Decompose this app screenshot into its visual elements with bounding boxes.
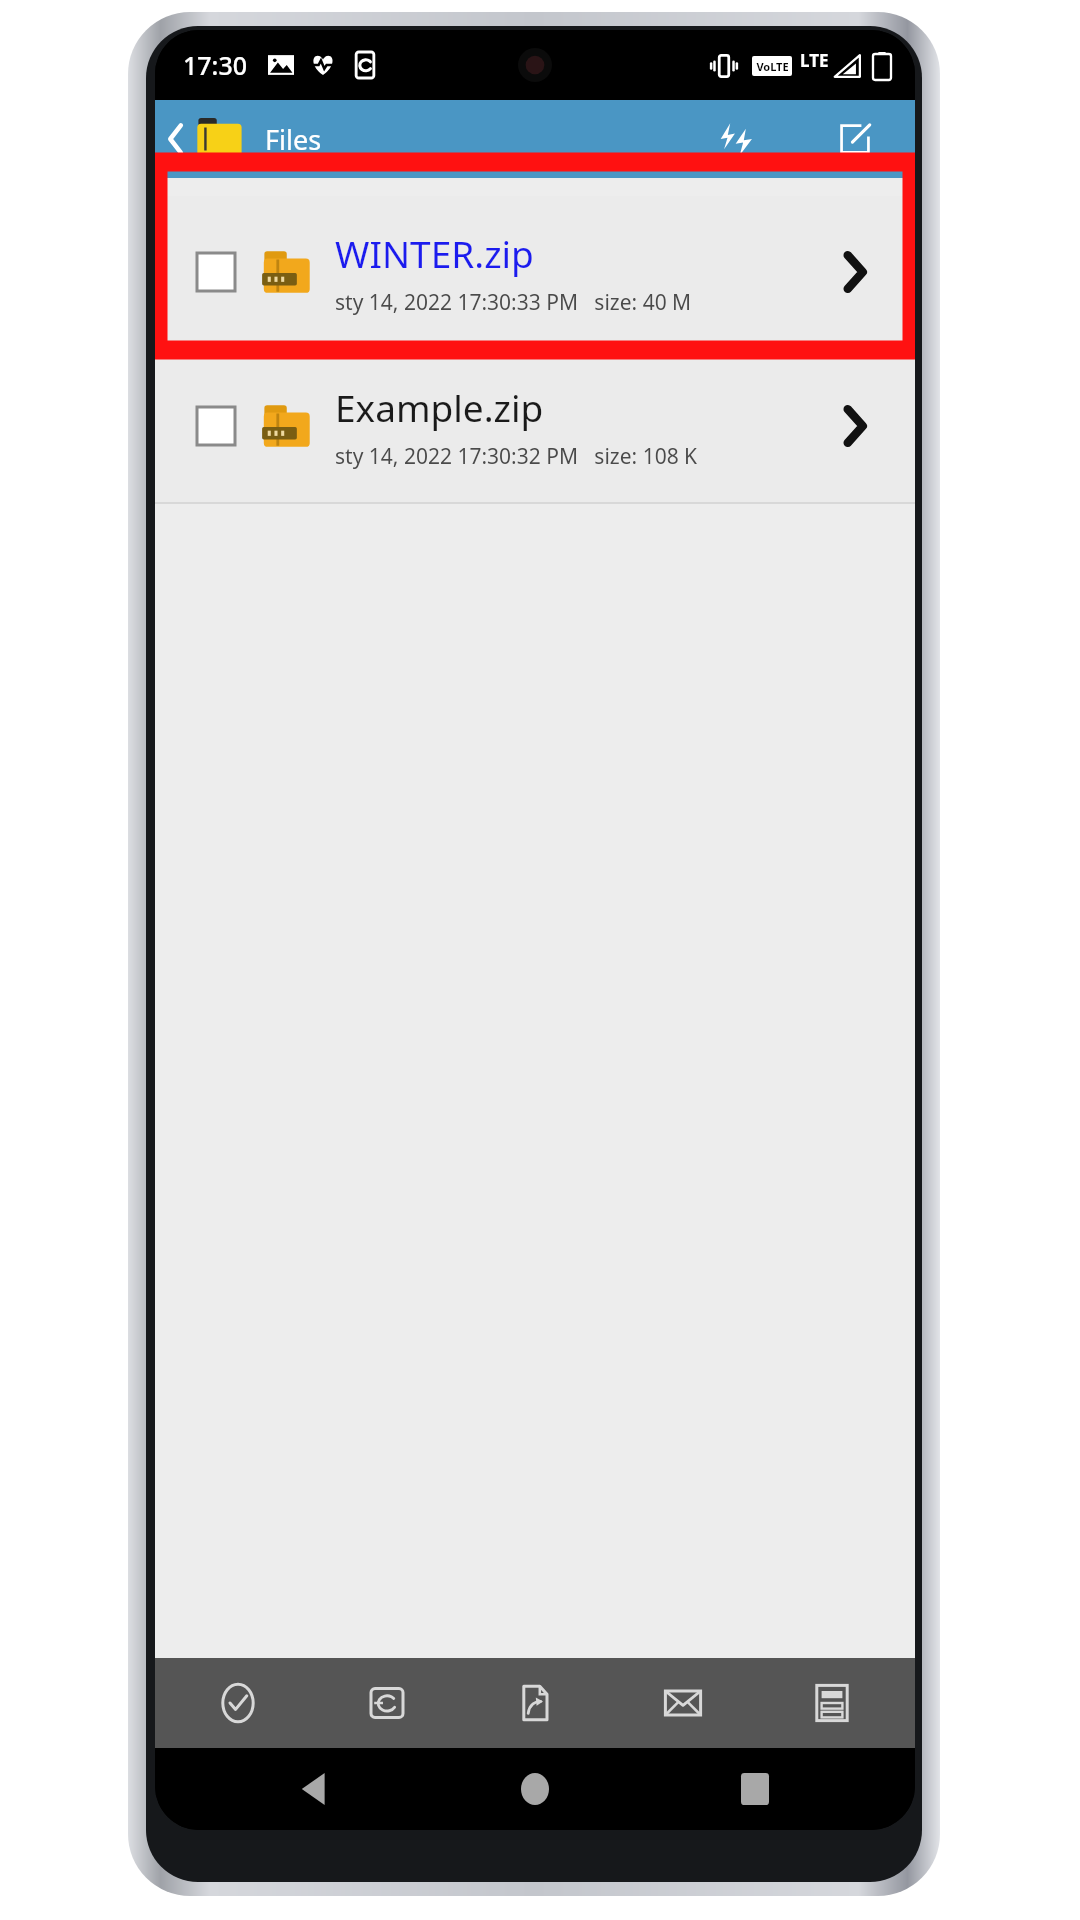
button[interactable]: Select WINTER.zip [189, 245, 243, 299]
button[interactable]: Share file [470, 1658, 600, 1748]
button[interactable]: View options [767, 1658, 897, 1748]
staticText: Files [265, 121, 322, 158]
staticText: sty 14, 2022 17:30:32 PM size: 108 K [335, 442, 698, 471]
button[interactable]: Recent apps [695, 1748, 815, 1830]
button[interactable]: Email [618, 1658, 748, 1748]
button[interactable]: Select Example.zip [189, 399, 243, 453]
staticText: sty 14, 2022 17:30:33 PM size: 40 M [335, 288, 692, 317]
button[interactable]: Files [155, 107, 334, 171]
button[interactable]: Quick actions [705, 107, 769, 171]
button[interactable]: Open Example.zip [815, 386, 895, 466]
button[interactable]: Select Example.zip [155, 350, 915, 502]
button[interactable]: Select all [173, 1658, 303, 1748]
button[interactable]: Open WINTER.zip [815, 232, 895, 312]
staticText: VoLTE [756, 59, 789, 74]
button[interactable]: Convert [322, 1658, 452, 1748]
staticText: LTE [800, 49, 829, 72]
staticText: 17:30 [183, 48, 248, 82]
staticText: WINTER.zip [335, 228, 534, 278]
button[interactable]: Edit [823, 107, 887, 171]
button[interactable]: Home [475, 1748, 595, 1830]
staticText: Example.zip [335, 382, 544, 432]
button[interactable]: Back [255, 1748, 375, 1830]
button[interactable]: Select WINTER.zip [155, 196, 915, 348]
